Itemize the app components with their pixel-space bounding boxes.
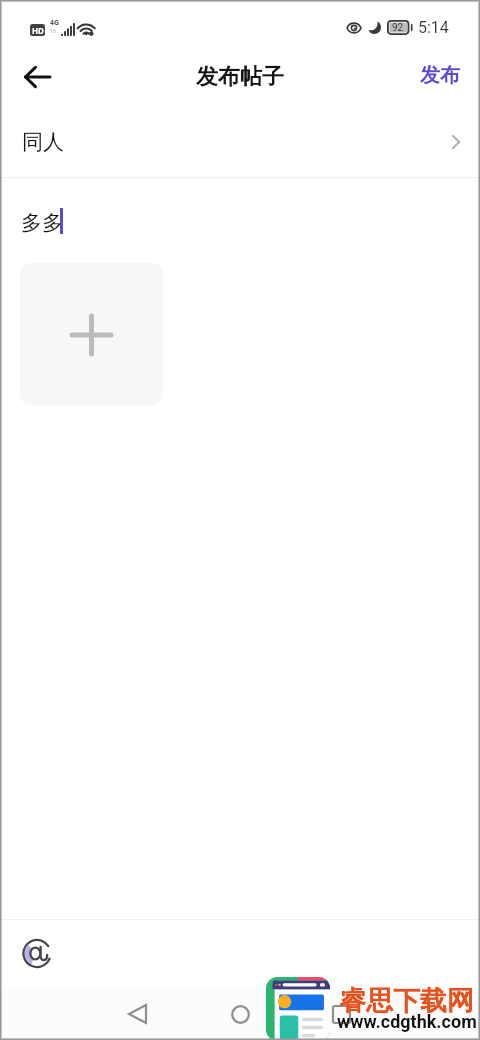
- button[interactable]: Back: [13, 53, 61, 101]
- staticText: 多多: [21, 210, 63, 236]
- staticText: 15: [50, 28, 56, 35]
- staticText: 睿思下载网: [339, 984, 474, 1018]
- button[interactable]: Add image: [20, 263, 163, 405]
- button[interactable]: Back: [113, 990, 161, 1038]
- button[interactable]: 发布: [420, 65, 460, 90]
- staticText: 同人: [22, 129, 64, 155]
- button[interactable]: Recents: [317, 990, 365, 1038]
- staticText: www.cdgthk.com: [337, 1011, 477, 1032]
- staticText: 5:14: [418, 18, 449, 37]
- staticText: 发布帖子: [196, 63, 284, 91]
- staticText: 4G: [50, 18, 60, 28]
- button[interactable]: Home: [216, 990, 264, 1038]
- staticText: 发布: [420, 63, 460, 88]
- staticText: 92: [392, 22, 404, 34]
- button[interactable]: 同人: [0, 103, 480, 177]
- button[interactable]: Mention: [16, 932, 58, 974]
- staticText: HD: [32, 25, 44, 36]
